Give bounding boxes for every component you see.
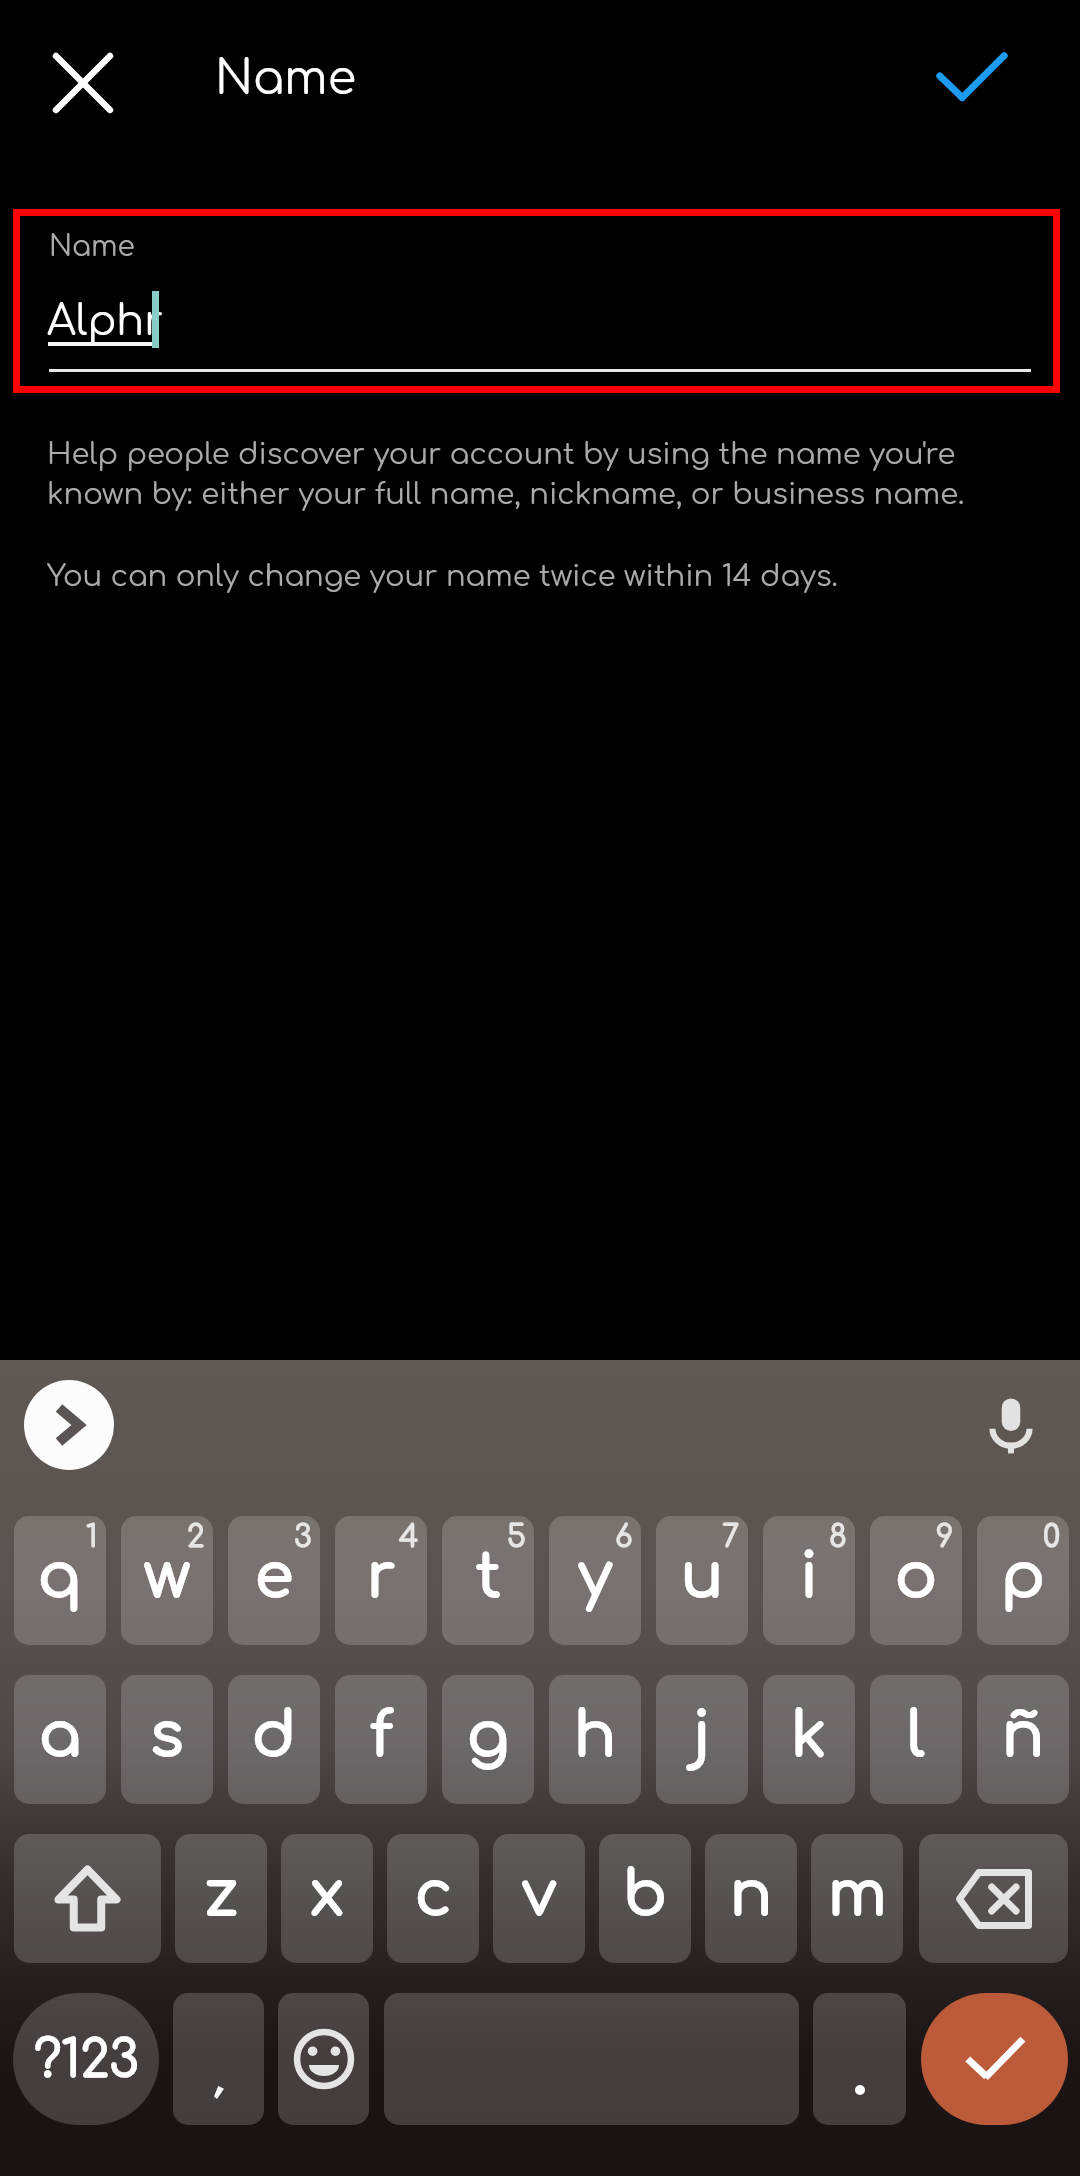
button[interactable]: ?123 [13, 1993, 159, 2125]
button[interactable]: n [705, 1834, 797, 1963]
button[interactable]: j [656, 1675, 748, 1804]
button[interactable]: Emoji [278, 1993, 369, 2125]
staticText: m [828, 1860, 887, 1929]
staticText: i [800, 1542, 818, 1611]
button[interactable]: l [870, 1675, 962, 1804]
button[interactable]: x [281, 1834, 373, 1963]
staticText: n [730, 1860, 772, 1929]
staticText: ?123 [34, 2033, 139, 2089]
button[interactable]: t [442, 1516, 534, 1645]
button[interactable]: Shift [14, 1834, 161, 1963]
button[interactable]: Expand toolbar [24, 1380, 114, 1470]
button[interactable]: Voice input [975, 1388, 1047, 1460]
staticText: g [467, 1701, 509, 1770]
button[interactable]: i [763, 1516, 855, 1645]
button[interactable]: o [870, 1516, 962, 1645]
staticText: 2 [187, 1521, 205, 1554]
staticText: 7 [722, 1521, 740, 1554]
staticText: y [578, 1542, 612, 1611]
button[interactable]: d [228, 1675, 320, 1804]
staticText: c [415, 1860, 452, 1929]
button[interactable]: a [14, 1675, 106, 1804]
staticText: Name [49, 231, 135, 262]
staticText: v [522, 1860, 557, 1929]
staticText: q [38, 1542, 82, 1611]
button[interactable]: Space [384, 1993, 799, 2125]
staticText: 5 [507, 1521, 526, 1554]
staticText: 0 [1043, 1521, 1061, 1554]
staticText: 4 [399, 1521, 419, 1554]
staticText: b [623, 1860, 667, 1929]
staticText: f [370, 1701, 393, 1770]
button[interactable]: k [763, 1675, 855, 1804]
staticText: x [310, 1860, 344, 1929]
button[interactable]: u [656, 1516, 748, 1645]
staticText: You can only change your name twice with… [47, 560, 838, 592]
button[interactable]: Comma [173, 1993, 264, 2125]
button[interactable]: Enter [921, 1993, 1068, 2125]
button[interactable]: y [549, 1516, 641, 1645]
staticText: 8 [829, 1521, 847, 1554]
button[interactable]: c [387, 1834, 479, 1963]
staticText: ñ [1002, 1701, 1044, 1770]
staticText: Name [215, 53, 356, 104]
button[interactable]: z [175, 1834, 267, 1963]
button[interactable]: s [121, 1675, 213, 1804]
staticText: j [693, 1701, 711, 1770]
button[interactable]: Period [813, 1993, 906, 2125]
staticText: o [895, 1542, 937, 1611]
staticText: 1 [86, 1521, 98, 1554]
button[interactable]: m [811, 1834, 903, 1963]
button[interactable]: v [493, 1834, 585, 1963]
button[interactable]: p [977, 1516, 1069, 1645]
staticText: Help people discover your account by usi… [47, 438, 965, 511]
button[interactable]: h [549, 1675, 641, 1804]
staticText: z [204, 1860, 239, 1929]
button[interactable]: Save [920, 26, 1024, 130]
button[interactable]: b [599, 1834, 691, 1963]
staticText: k [791, 1701, 827, 1770]
button[interactable]: w [121, 1516, 213, 1645]
staticText: 3 [294, 1521, 312, 1554]
staticText: Alphr [47, 299, 163, 345]
staticText: p [1001, 1542, 1045, 1611]
button[interactable]: q [14, 1516, 106, 1645]
staticText: a [39, 1701, 81, 1770]
button[interactable]: g [442, 1675, 534, 1804]
staticText: t [476, 1542, 501, 1611]
staticText: e [255, 1542, 294, 1611]
staticText: l [907, 1701, 925, 1770]
staticText: s [150, 1701, 184, 1770]
staticText: u [681, 1542, 723, 1611]
staticText: w [144, 1542, 190, 1611]
staticText: 9 [936, 1521, 954, 1554]
button[interactable]: r [335, 1516, 427, 1645]
staticText: h [574, 1701, 616, 1770]
button[interactable]: Backspace [919, 1834, 1068, 1963]
staticText: r [367, 1542, 396, 1611]
staticText: d [252, 1701, 296, 1770]
button[interactable]: e [228, 1516, 320, 1645]
staticText: 6 [615, 1521, 633, 1554]
button[interactable]: ñ [977, 1675, 1069, 1804]
button[interactable]: f [335, 1675, 427, 1804]
button[interactable]: Close [30, 30, 134, 134]
